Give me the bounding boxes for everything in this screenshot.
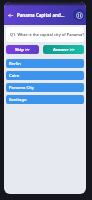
button[interactable]: Berlin (6, 59, 84, 68)
staticText: Santiago (9, 97, 27, 103)
staticText: Panama City (9, 85, 35, 91)
staticText: Cairo (9, 73, 20, 79)
staticText: Q1. What is the capital city of Panama? (10, 32, 84, 37)
button[interactable]: Pause timer (73, 9, 85, 21)
button[interactable]: Back (6, 11, 15, 20)
button[interactable]: Santiago (6, 95, 84, 104)
staticText: Skip >> (15, 47, 30, 53)
button[interactable]: Panama City (6, 83, 84, 92)
button[interactable]: Skip >> (6, 45, 39, 54)
staticText: Berlin (9, 61, 21, 67)
button[interactable]: Answer >> (43, 45, 84, 54)
staticText: Panama Capital and... (17, 12, 73, 18)
button[interactable]: Cairo (6, 71, 84, 80)
staticText: Answer >> (53, 47, 75, 53)
